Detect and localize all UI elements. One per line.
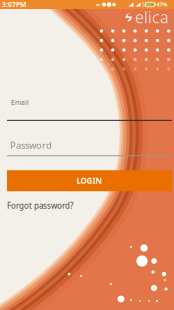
staticText: 5	[142, 1, 145, 8]
staticText: Forgot password?	[7, 200, 73, 211]
staticText: Password	[10, 139, 52, 151]
staticText: 3:07PM	[2, 0, 26, 9]
staticText: LOGIN	[76, 175, 102, 186]
staticText: elica	[135, 6, 169, 28]
staticText: Email	[11, 98, 29, 107]
staticText: 47%	[156, 1, 167, 8]
button[interactable]: LOGIN	[7, 170, 172, 191]
button[interactable]: Forgot password?	[2, 200, 73, 211]
